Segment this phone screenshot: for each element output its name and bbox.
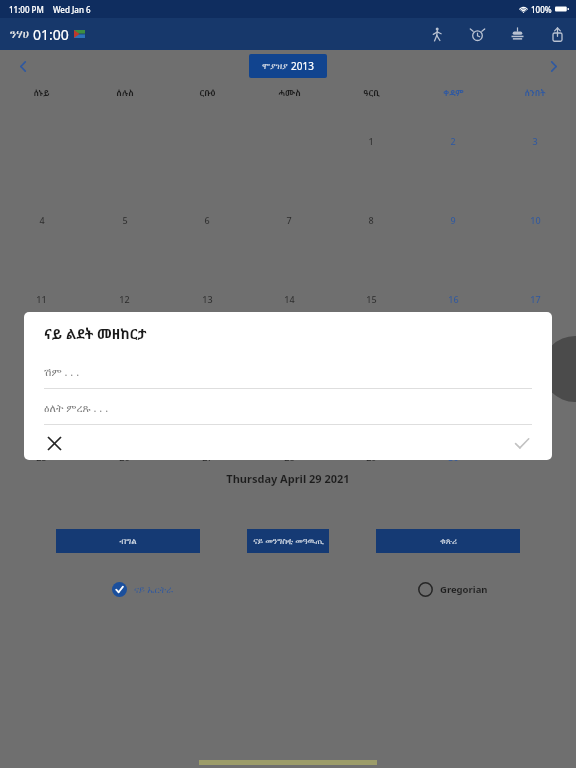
button[interactable]: ብግል xyxy=(56,529,200,553)
staticText: ናይ መንግስቲ መዓዉጢ xyxy=(253,535,324,547)
button[interactable]: Gregorian xyxy=(418,579,488,600)
staticText: ዓርቢ xyxy=(363,87,380,99)
button[interactable]: Add reminder xyxy=(542,336,576,402)
staticText: ሞያዝያ xyxy=(262,62,288,71)
button[interactable]: 13 xyxy=(166,262,248,341)
button[interactable]: Cancel xyxy=(38,427,70,459)
button[interactable]: 29 xyxy=(330,420,412,499)
button[interactable]: ናይ ኤርትራ xyxy=(112,579,174,600)
staticText: 4 xyxy=(39,214,45,226)
button[interactable]: ርቡዕ xyxy=(166,82,248,104)
staticText: 16 xyxy=(448,293,459,305)
button[interactable]: 11 xyxy=(0,262,83,341)
staticText: Wed Jan 6 xyxy=(53,4,91,15)
staticText: 14 xyxy=(284,293,295,305)
button[interactable]: ሰንበት xyxy=(494,82,576,104)
button[interactable]: 19 xyxy=(83,341,166,420)
button[interactable]: ሰሉስ xyxy=(83,82,166,104)
button[interactable]: Next month xyxy=(541,54,565,78)
staticText: 15 xyxy=(366,293,377,305)
button[interactable]: 21 xyxy=(248,341,330,420)
staticText: 10 xyxy=(530,214,541,226)
button[interactable]: Save xyxy=(506,427,538,459)
button[interactable] xyxy=(248,499,330,578)
button[interactable]: ዕለት ምረጹ . . . xyxy=(44,400,532,425)
button[interactable]: 14 xyxy=(248,262,330,341)
button[interactable]: Share xyxy=(544,21,570,47)
staticText: 30 xyxy=(448,451,459,463)
button[interactable]: 27 xyxy=(166,420,248,499)
staticText: ሰሉስ xyxy=(116,87,134,99)
staticText: ርቡዕ xyxy=(199,87,216,99)
staticText: 26 xyxy=(119,451,130,463)
button[interactable]: 15 xyxy=(330,262,412,341)
button[interactable]: ዓርቢ xyxy=(330,82,412,104)
button[interactable]: Birthdays xyxy=(504,21,530,47)
button[interactable]: ሞያዝያ xyxy=(249,54,327,78)
staticText: ሓሙስ xyxy=(278,87,301,99)
button[interactable]: 20 xyxy=(166,341,248,420)
staticText: 29 xyxy=(366,451,377,463)
button[interactable]: Alarm xyxy=(464,21,490,47)
staticText: ብግል xyxy=(119,537,137,546)
staticText: 6 xyxy=(204,214,210,226)
button[interactable]: ናይ መንግስቲ መዓዉጢ xyxy=(247,529,329,553)
button[interactable]: 22 xyxy=(330,341,412,420)
staticText: 13 xyxy=(202,293,213,305)
button[interactable]: 12 xyxy=(83,262,166,341)
staticText: Thursday April 29 2021 xyxy=(226,471,350,486)
button[interactable] xyxy=(166,499,248,578)
staticText: ንሃሀ xyxy=(10,28,29,40)
staticText: 100% xyxy=(531,4,552,15)
staticText: 3 xyxy=(532,135,538,147)
button[interactable]: ሰኑይ xyxy=(0,82,83,104)
staticText: 28 xyxy=(284,451,295,463)
button[interactable] xyxy=(494,499,576,578)
button[interactable]: 23 xyxy=(412,341,494,420)
button[interactable] xyxy=(0,499,83,578)
button[interactable]: 26 xyxy=(83,420,166,499)
staticText: 11:00 PM xyxy=(9,4,44,15)
button[interactable] xyxy=(412,499,494,578)
staticText: 1 xyxy=(368,135,374,147)
staticText: Gregorian xyxy=(440,583,488,596)
staticText: 01:00 xyxy=(33,25,69,44)
button[interactable]: 18 xyxy=(0,341,83,420)
button[interactable]: ሓሙስ xyxy=(248,82,330,104)
button[interactable]: 16 xyxy=(412,262,494,341)
button[interactable]: ቁጽሪ xyxy=(376,529,520,553)
staticText: 2 xyxy=(450,135,456,147)
button[interactable]: 24 xyxy=(494,341,576,420)
button[interactable] xyxy=(494,420,576,499)
button[interactable]: ሽም . . . xyxy=(44,364,532,389)
staticText: 25 xyxy=(36,451,47,463)
button[interactable] xyxy=(83,499,166,578)
button[interactable]: 17 xyxy=(494,262,576,341)
button[interactable]: Activity xyxy=(424,21,450,47)
button[interactable] xyxy=(330,499,412,578)
button[interactable]: ቀዳም xyxy=(412,82,494,104)
button[interactable]: 28 xyxy=(248,420,330,499)
staticText: ቁጽሪ xyxy=(440,537,457,546)
button[interactable]: Previous month xyxy=(11,54,35,78)
button[interactable]: 30 xyxy=(412,420,494,499)
button[interactable]: 25 xyxy=(0,420,83,499)
